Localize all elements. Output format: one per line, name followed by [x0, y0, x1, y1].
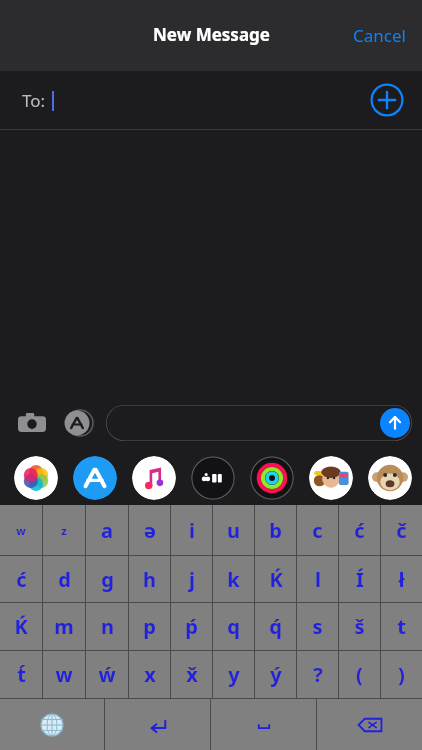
button[interactable]: y: [213, 651, 254, 698]
button[interactable]: j: [171, 556, 212, 602]
staticText: ə: [144, 517, 156, 544]
button[interactable]: ý: [255, 651, 296, 698]
staticText: š: [354, 613, 365, 640]
button[interactable]: d: [43, 556, 85, 602]
button[interactable]: č: [381, 505, 422, 555]
staticText: m: [54, 613, 74, 640]
staticText: ć: [16, 566, 27, 593]
staticText: k: [227, 566, 240, 593]
staticText: b: [269, 517, 282, 544]
staticText: n: [101, 613, 114, 640]
button[interactable]: Return: [105, 699, 210, 750]
staticText: l: [315, 566, 321, 593]
staticText: x̌: [186, 661, 198, 688]
button[interactable]: b: [255, 505, 296, 555]
staticText: q: [227, 613, 240, 640]
staticText: z: [61, 523, 67, 538]
staticText: ł: [398, 566, 405, 593]
button[interactable]: g: [86, 556, 128, 602]
button[interactable]: Send: [380, 408, 410, 438]
staticText: u: [227, 517, 240, 544]
staticText: y: [228, 661, 240, 688]
button[interactable]: q: [213, 603, 254, 650]
staticText: x: [144, 661, 156, 688]
staticText: a: [101, 517, 113, 544]
button[interactable]: Memoji group: [309, 456, 353, 500]
staticText: t: [397, 613, 406, 640]
button[interactable]: ć: [339, 505, 380, 555]
button[interactable]: š: [339, 603, 380, 650]
staticText: c: [312, 517, 323, 544]
button[interactable]: u: [213, 505, 254, 555]
button[interactable]: Cancel: [345, 18, 414, 53]
staticText: Í: [356, 566, 364, 593]
button[interactable]: (: [339, 651, 380, 698]
staticText: ?: [313, 661, 323, 688]
button[interactable]: Ḱ: [255, 556, 296, 602]
button[interactable]: Music: [132, 456, 176, 500]
button[interactable]: Switch keyboard: [0, 699, 104, 750]
button[interactable]: Photos: [14, 456, 58, 500]
button[interactable]: l: [297, 556, 338, 602]
button[interactable]: h: [129, 556, 170, 602]
staticText: h: [143, 566, 156, 593]
button[interactable]: Í: [339, 556, 380, 602]
button[interactable]: i: [171, 505, 212, 555]
button[interactable]: ć: [0, 556, 42, 602]
staticText: č: [396, 517, 407, 544]
staticText: w: [55, 661, 73, 688]
staticText: (: [356, 661, 363, 688]
button[interactable]: c: [297, 505, 338, 555]
staticText: g: [101, 566, 114, 593]
staticText: Cancel: [353, 24, 406, 47]
staticText: To:: [22, 89, 46, 112]
staticText: j: [189, 566, 195, 593]
button[interactable]: Send: [106, 405, 412, 441]
button[interactable]: Fitness: [250, 456, 294, 500]
staticText: t́: [17, 661, 26, 688]
button[interactable]: p: [129, 603, 170, 650]
button[interactable]: ł: [381, 556, 422, 602]
button[interactable]: q́: [255, 603, 296, 650]
button[interactable]: m: [43, 603, 85, 650]
button[interactable]: ?: [297, 651, 338, 698]
button[interactable]: x̌: [171, 651, 212, 698]
staticText: s: [312, 613, 323, 640]
button[interactable]: t́: [0, 651, 42, 698]
button[interactable]: z: [43, 505, 85, 555]
staticText: ẃ: [98, 661, 116, 688]
staticText: ć: [354, 517, 365, 544]
button[interactable]: Monkey memoji: [368, 456, 412, 500]
staticText: d: [58, 566, 71, 593]
button[interactable]: Camera: [16, 407, 48, 439]
button[interactable]: Ḱ: [0, 603, 42, 650]
staticText: ý: [270, 661, 282, 688]
button[interactable]: x: [129, 651, 170, 698]
button[interactable]: n: [86, 603, 128, 650]
staticText: New Message: [153, 23, 270, 46]
button[interactable]: w: [43, 651, 85, 698]
button[interactable]: a: [86, 505, 128, 555]
staticText: Ḱ: [14, 613, 28, 640]
button[interactable]: t: [381, 603, 422, 650]
button[interactable]: k: [213, 556, 254, 602]
staticText: Ḱ: [269, 566, 283, 593]
button[interactable]: ṕ: [171, 603, 212, 650]
button[interactable]: ə: [129, 505, 170, 555]
button[interactable]: To:: [0, 71, 422, 129]
button[interactable]: ): [381, 651, 422, 698]
button[interactable]: App Store: [73, 456, 117, 500]
staticText: ): [398, 661, 405, 688]
button[interactable]: ẃ: [86, 651, 128, 698]
staticText: i: [189, 517, 195, 544]
staticText: q́: [269, 613, 282, 640]
button[interactable]: Add contact: [370, 83, 404, 117]
button[interactable]: Space: [211, 699, 316, 750]
staticText: ṕ: [185, 613, 198, 640]
button[interactable]: Apple Pay: [191, 456, 235, 500]
button[interactable]: w: [0, 505, 42, 555]
staticText: w: [16, 523, 26, 538]
button[interactable]: Backspace: [317, 699, 422, 750]
button[interactable]: s: [297, 603, 338, 650]
button[interactable]: App Store: [62, 408, 92, 438]
